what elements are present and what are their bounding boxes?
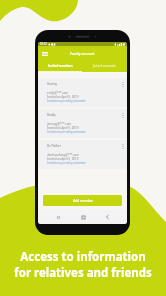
staticText: Invited on April 5, 2019 [47, 126, 79, 130]
staticText: Add member [73, 199, 93, 203]
button[interactable]: More options [119, 81, 126, 88]
staticText: Joined accounts [93, 64, 116, 68]
button[interactable]: Menu [40, 49, 49, 58]
button[interactable]: Recents [53, 212, 63, 222]
staticText: jimmyg@***.com [47, 122, 72, 126]
staticText: Invitations pending activation [47, 99, 87, 103]
button[interactable]: Granny [38, 78, 127, 107]
staticText: Daddy [47, 113, 56, 117]
staticText: Family account [70, 51, 95, 56]
staticText: Invitations pending activation [47, 130, 87, 134]
staticText: Invitations pending activation [47, 161, 87, 165]
button[interactable]: Joined accounts [82, 60, 127, 71]
button[interactable]: Dr. Plafker [38, 140, 127, 169]
staticText: 10:12 [40, 42, 47, 46]
button[interactable]: Add member [43, 195, 122, 206]
button[interactable]: Home [78, 212, 88, 222]
staticText: Dr. Plafker [47, 144, 61, 148]
staticText: Access to information [20, 249, 146, 265]
button[interactable]: More options [119, 143, 126, 150]
button[interactable]: Daddy [38, 109, 127, 138]
staticText: derek.pafang@***.com [47, 153, 80, 157]
button[interactable]: More options [119, 112, 126, 119]
button[interactable]: Back [102, 212, 112, 222]
staticText: Invited on April 5, 2019 [47, 157, 79, 161]
button[interactable]: Invited members [38, 60, 82, 71]
staticText: Granny [47, 82, 57, 86]
staticText: Invited on April 5, 2019 [47, 95, 79, 99]
staticText: for relatives and friends [14, 265, 152, 281]
staticText: Invited members [48, 64, 73, 68]
staticText: emily@***.com [47, 91, 69, 95]
